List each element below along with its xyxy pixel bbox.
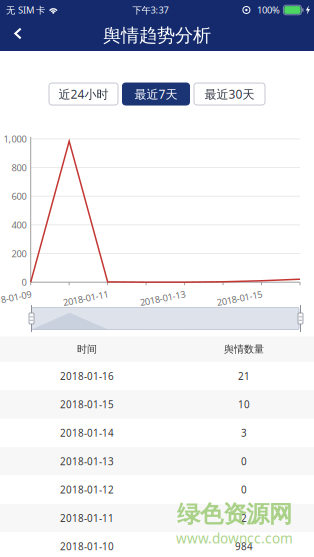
staticText: 近24小时 [58,86,108,102]
staticText: 0 [21,276,26,288]
staticText: 2018-01-15 [217,287,263,300]
staticText: 984 [235,540,253,553]
button[interactable]: 2018-01-15 [0,390,314,419]
button[interactable]: 最近30天 [194,83,265,105]
staticText: 2018-01-09 [0,287,32,300]
staticText: 2018-01-11 [63,287,109,300]
staticText: 2018-01-15 [60,398,114,411]
staticText: 最近30天 [204,86,254,102]
staticText: 21 [238,369,250,383]
button[interactable]: 返回 [0,20,30,51]
staticText: www.downcc.com [176,529,293,547]
staticText: 无 SIM 卡 [6,4,45,16]
staticText: 下午3:37 [132,4,168,16]
staticText: 3 [241,426,247,440]
staticText: 1,000 [3,132,26,145]
staticText: 0 [241,483,247,496]
staticText: 2018-01-16 [60,369,114,383]
staticText: 2018-01-10 [60,540,114,553]
staticText: 200 [11,247,26,260]
staticText: 10 [238,398,250,411]
staticText: 舆情数量 [224,343,264,355]
button[interactable]: 2018-01-13 [0,447,314,475]
staticText: 800 [11,161,26,174]
button[interactable]: 2018-01-16 [0,362,314,390]
button[interactable]: 2018-01-11 [0,504,314,532]
button[interactable]: 2018-01-14 [0,419,314,447]
staticText: 2 [241,511,247,525]
staticText: 2018-01-14 [60,426,114,440]
staticText: 最近7天 [134,86,177,102]
staticText: 时间 [77,343,97,355]
staticText: 0 [241,455,247,468]
staticText: 400 [11,218,26,231]
staticText: 2018-01-13 [140,287,186,300]
staticText: 绿色资源网 [177,499,292,529]
button[interactable]: 范围终点 [298,305,303,332]
button[interactable]: 最近7天 [122,83,189,105]
button[interactable]: 近24小时 [49,83,118,105]
staticText: 2018-01-12 [60,483,114,496]
button[interactable]: 范围起点 [29,305,34,332]
staticText: 600 [11,190,26,203]
staticText: 2018-01-11 [60,511,114,525]
button[interactable]: 2018-01-12 [0,475,314,504]
staticText: 100% [257,4,280,16]
button[interactable]: 2018-01-10 [0,532,314,557]
staticText: 舆情趋势分析 [103,24,211,47]
staticText: 2018-01-13 [60,455,114,468]
